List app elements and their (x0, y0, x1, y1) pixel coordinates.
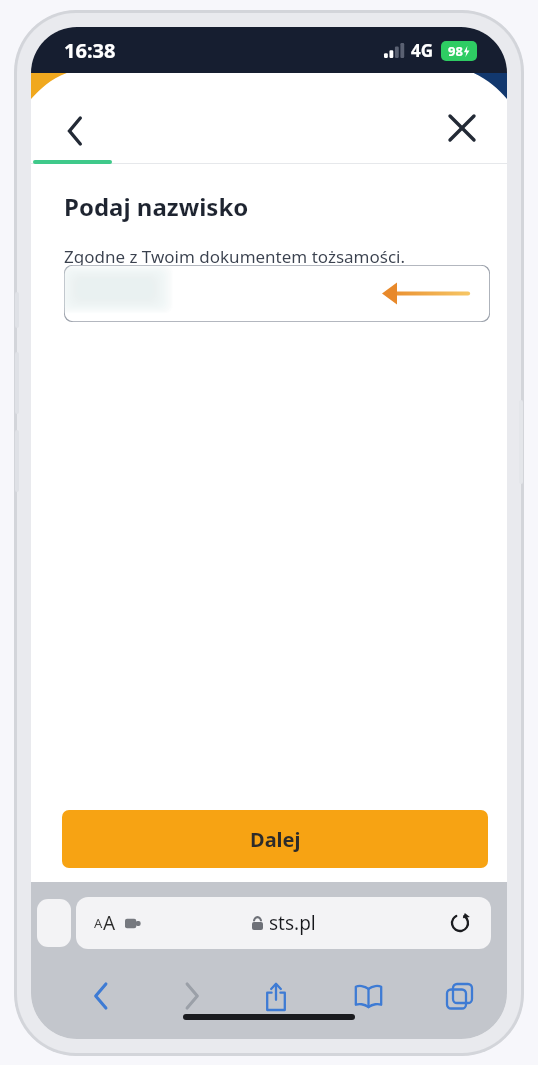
button[interactable]: Back (78, 973, 124, 1019)
button[interactable]: Bookmarks (345, 973, 391, 1019)
staticText: Zgodne z Twoim dokumentem tożsamości. (64, 245, 406, 268)
staticText: sts.pl (269, 910, 316, 936)
button[interactable]: Share (253, 973, 299, 1019)
staticText: 98 (448, 42, 463, 60)
button[interactable]: Close (435, 101, 489, 155)
button[interactable]: Tabs (436, 973, 482, 1019)
button[interactable]: Dalej (62, 810, 488, 868)
staticText: 4G (411, 39, 434, 62)
staticText: A (103, 910, 116, 936)
staticText: 16:38 (64, 37, 116, 64)
staticText: A (94, 914, 103, 932)
button[interactable]: Reload (443, 906, 477, 940)
button[interactable]: A (76, 897, 491, 949)
button[interactable]: Forward (169, 973, 215, 1019)
button[interactable] (64, 265, 490, 322)
staticText: Podaj nazwisko (64, 190, 249, 223)
button[interactable]: Back (49, 105, 101, 157)
staticText: Dalej (250, 826, 301, 853)
